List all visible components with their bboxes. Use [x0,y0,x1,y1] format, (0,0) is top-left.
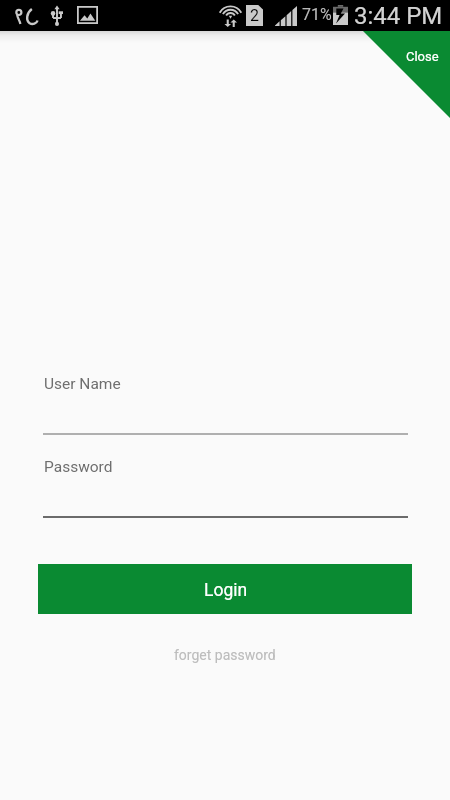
staticText: 71% [302,5,332,24]
staticText: Login [204,580,248,601]
staticText: 2 [250,6,259,25]
button[interactable]: Password [43,458,408,518]
staticText: Close [406,49,439,64]
button[interactable]: Login [38,564,412,614]
button[interactable]: forget password [166,643,284,667]
button[interactable]: Close [363,31,450,118]
staticText: 3:44 PM [354,2,443,30]
button[interactable]: User Name [43,375,408,435]
staticText: Password [44,458,113,476]
staticText: User Name [44,375,121,393]
